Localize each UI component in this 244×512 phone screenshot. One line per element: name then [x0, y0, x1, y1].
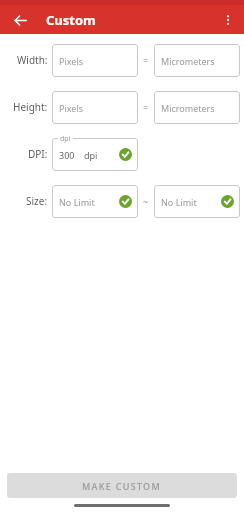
button[interactable]: MAKE CUSTOM	[7, 473, 237, 498]
staticText: dpi	[60, 134, 71, 144]
button[interactable]: 300	[52, 138, 138, 171]
staticText: DPI:	[28, 147, 48, 161]
staticText: Height:	[13, 100, 48, 114]
staticText: No Limit	[161, 196, 197, 208]
button[interactable]: No Limit	[52, 185, 138, 218]
staticText: Size:	[26, 194, 48, 208]
staticText: 300	[59, 149, 75, 161]
staticText: ~	[143, 195, 149, 207]
staticText: Pixels	[59, 55, 84, 67]
staticText: Micrometers	[161, 102, 215, 114]
button[interactable]: No Limit	[154, 185, 240, 218]
staticText: dpi	[84, 149, 98, 161]
button[interactable]: Micrometers	[154, 44, 240, 77]
staticText: =	[143, 101, 149, 113]
button[interactable]: More options	[215, 7, 241, 33]
staticText: MAKE CUSTOM	[82, 480, 162, 492]
button[interactable]: Pixels	[52, 44, 138, 77]
button[interactable]: Pixels	[52, 91, 138, 124]
staticText: Pixels	[59, 102, 84, 114]
button[interactable]: Back	[7, 7, 33, 33]
staticText: =	[143, 54, 149, 66]
staticText: Micrometers	[161, 55, 215, 67]
staticText: No Limit	[59, 196, 95, 208]
staticText: Custom	[46, 11, 96, 29]
staticText: Width:	[17, 53, 48, 67]
button[interactable]: Micrometers	[154, 91, 240, 124]
